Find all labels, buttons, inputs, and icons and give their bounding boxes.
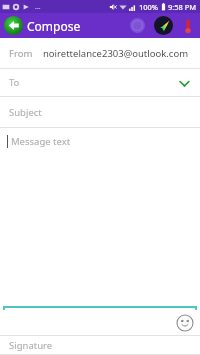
button[interactable]: More options — [176, 14, 200, 38]
button[interactable]: Attach — [124, 13, 150, 38]
button[interactable]: Back — [0, 16, 87, 35]
staticText: ... — [35, 2, 41, 12]
staticText: Subject — [9, 106, 42, 119]
button[interactable]: From — [0, 38, 200, 68]
staticText: 9:58 PM — [168, 2, 197, 12]
button[interactable]: Message text — [0, 128, 200, 306]
staticText: 100% — [139, 2, 159, 12]
button[interactable]: To — [0, 69, 200, 96]
button[interactable]: Signature — [0, 336, 200, 354]
staticText: Signature — [9, 339, 53, 352]
button[interactable]: Insert emoji — [176, 314, 194, 332]
staticText: To — [9, 76, 20, 89]
button[interactable]: Subject — [0, 97, 200, 127]
staticText: Compose — [27, 18, 81, 34]
staticText: noirettelance2303@outlook.com — [43, 47, 189, 60]
button[interactable]: Send — [150, 13, 176, 38]
button[interactable]: Expand recipients — [176, 75, 192, 91]
staticText: Message text — [11, 135, 71, 148]
staticText: From — [9, 47, 33, 60]
